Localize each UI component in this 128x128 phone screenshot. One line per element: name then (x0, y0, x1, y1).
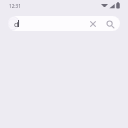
button[interactable]: Clear (86, 17, 100, 31)
button[interactable]: d (8, 16, 120, 31)
staticText: 12:31 (9, 3, 21, 9)
button[interactable]: Search (103, 17, 117, 31)
staticText: d (14, 19, 19, 29)
